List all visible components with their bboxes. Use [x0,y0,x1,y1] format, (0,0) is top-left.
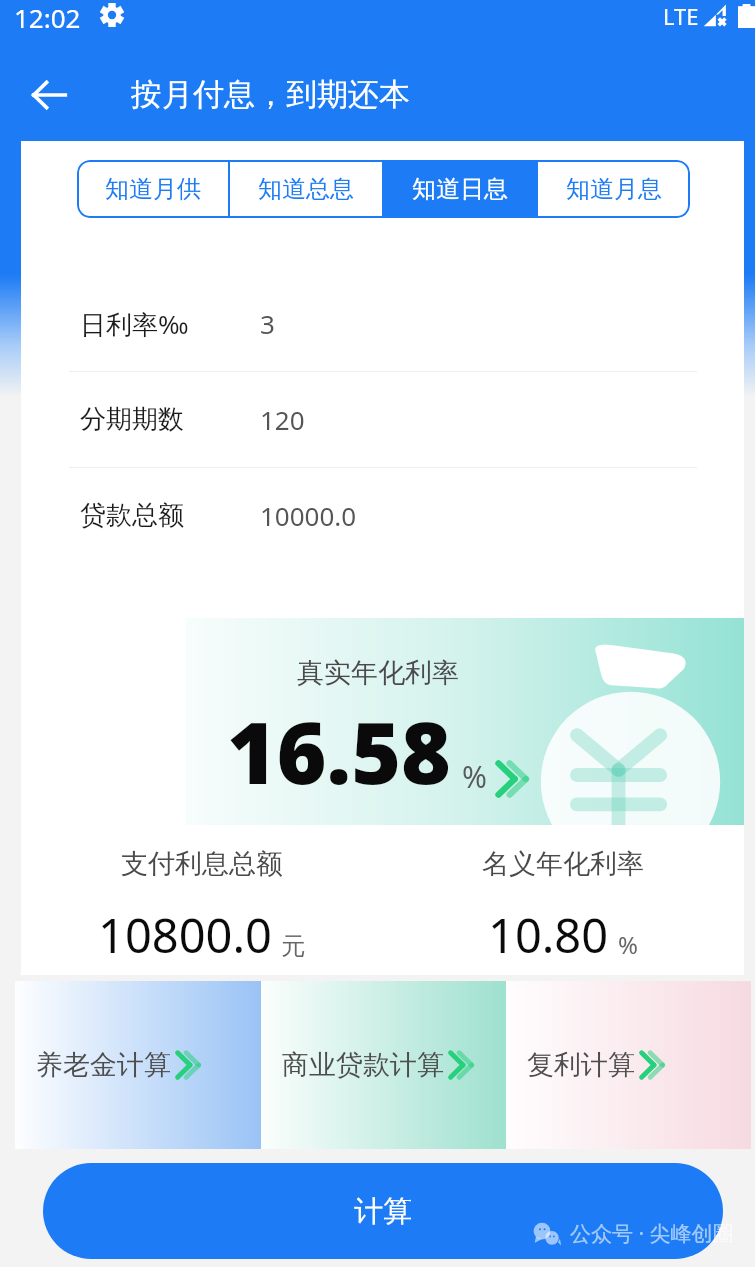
staticText: % [462,756,487,797]
staticText: 元 [281,931,305,961]
button[interactable]: 复利计算 [506,981,751,1149]
staticText: 12:02 [14,0,81,31]
staticText: 支付利息总额 [121,847,283,881]
staticText: 知道月供 [105,174,201,204]
staticText: 计算 [354,1193,412,1230]
staticText: 知道月息 [566,174,662,204]
staticText: 贷款总额 [80,499,184,532]
staticText: 10.80 [488,903,609,967]
staticText: 养老金计算 [36,1048,171,1082]
button[interactable]: 知道月息 [538,160,690,218]
button[interactable]: 日利率‰ [21,276,744,371]
button[interactable]: 知道总息 [230,160,382,218]
staticText: 日利率‰ [80,306,189,342]
staticText: 商业贷款计算 [282,1048,444,1082]
staticText: 复利计算 [527,1048,635,1082]
button[interactable]: 养老金计算 [15,981,261,1149]
staticText: 名义年化利率 [482,847,644,881]
staticText: 知道总息 [258,174,354,204]
staticText: 16.58 [227,693,451,809]
staticText: 10000.0 [260,498,357,533]
staticText: 公众号 · 尖峰创圈 [570,1219,734,1248]
button[interactable]: 商业贷款计算 [261,981,506,1149]
button[interactable]: 知道日息 [384,160,536,218]
staticText: 10800.0 [98,903,272,967]
staticText: % [618,928,638,961]
staticText: 分期期数 [80,403,184,436]
button[interactable]: 知道月供 [77,160,228,218]
staticText: 120 [260,402,305,437]
staticText: 按月付息，到期还本 [131,75,410,114]
button[interactable]: 分期期数 [21,372,744,467]
button[interactable]: 贷款总额 [21,468,744,563]
staticText: 知道日息 [412,174,508,204]
button[interactable]: 计算 [43,1163,723,1259]
staticText: 3 [260,306,275,341]
staticText: 真实年化利率 [297,656,459,690]
button[interactable]: Back [21,67,77,123]
staticText: LTE [663,1,699,31]
